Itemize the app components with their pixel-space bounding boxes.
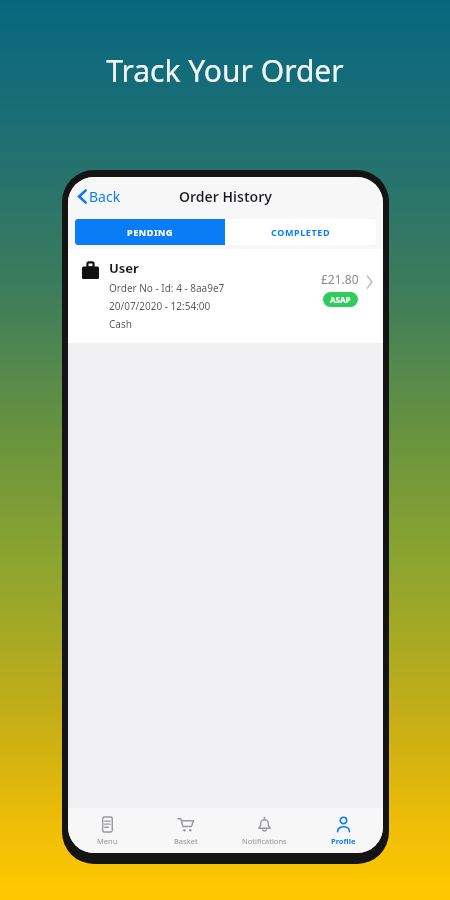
staticText: Profile <box>331 836 356 846</box>
staticText: PENDING <box>127 226 174 238</box>
staticText: User <box>109 259 139 277</box>
staticText: £21.80 <box>321 271 359 287</box>
staticText: Track Your Order <box>0 50 450 91</box>
button[interactable]: COMPLETED <box>225 219 376 245</box>
staticText: COMPLETED <box>271 226 331 238</box>
staticText: Notifications <box>242 836 287 846</box>
staticText: Back <box>89 187 121 206</box>
button[interactable]: Menu <box>68 808 146 853</box>
staticText: 20/07/2020 - 12:54:00 <box>109 299 211 313</box>
button[interactable]: Profile <box>304 808 383 853</box>
button[interactable]: Notifications <box>225 808 304 853</box>
button[interactable]: Back <box>74 182 125 211</box>
staticText: ASAP <box>330 294 351 305</box>
button[interactable]: User <box>68 249 383 343</box>
button[interactable]: Basket <box>146 808 225 853</box>
staticText: Order History <box>179 187 273 206</box>
button[interactable]: PENDING <box>75 219 225 245</box>
staticText: Order No - Id: 4 - 8aa9e7 <box>109 281 225 295</box>
staticText: Menu <box>97 836 118 846</box>
staticText: Cash <box>109 317 132 331</box>
staticText: Basket <box>174 836 198 846</box>
